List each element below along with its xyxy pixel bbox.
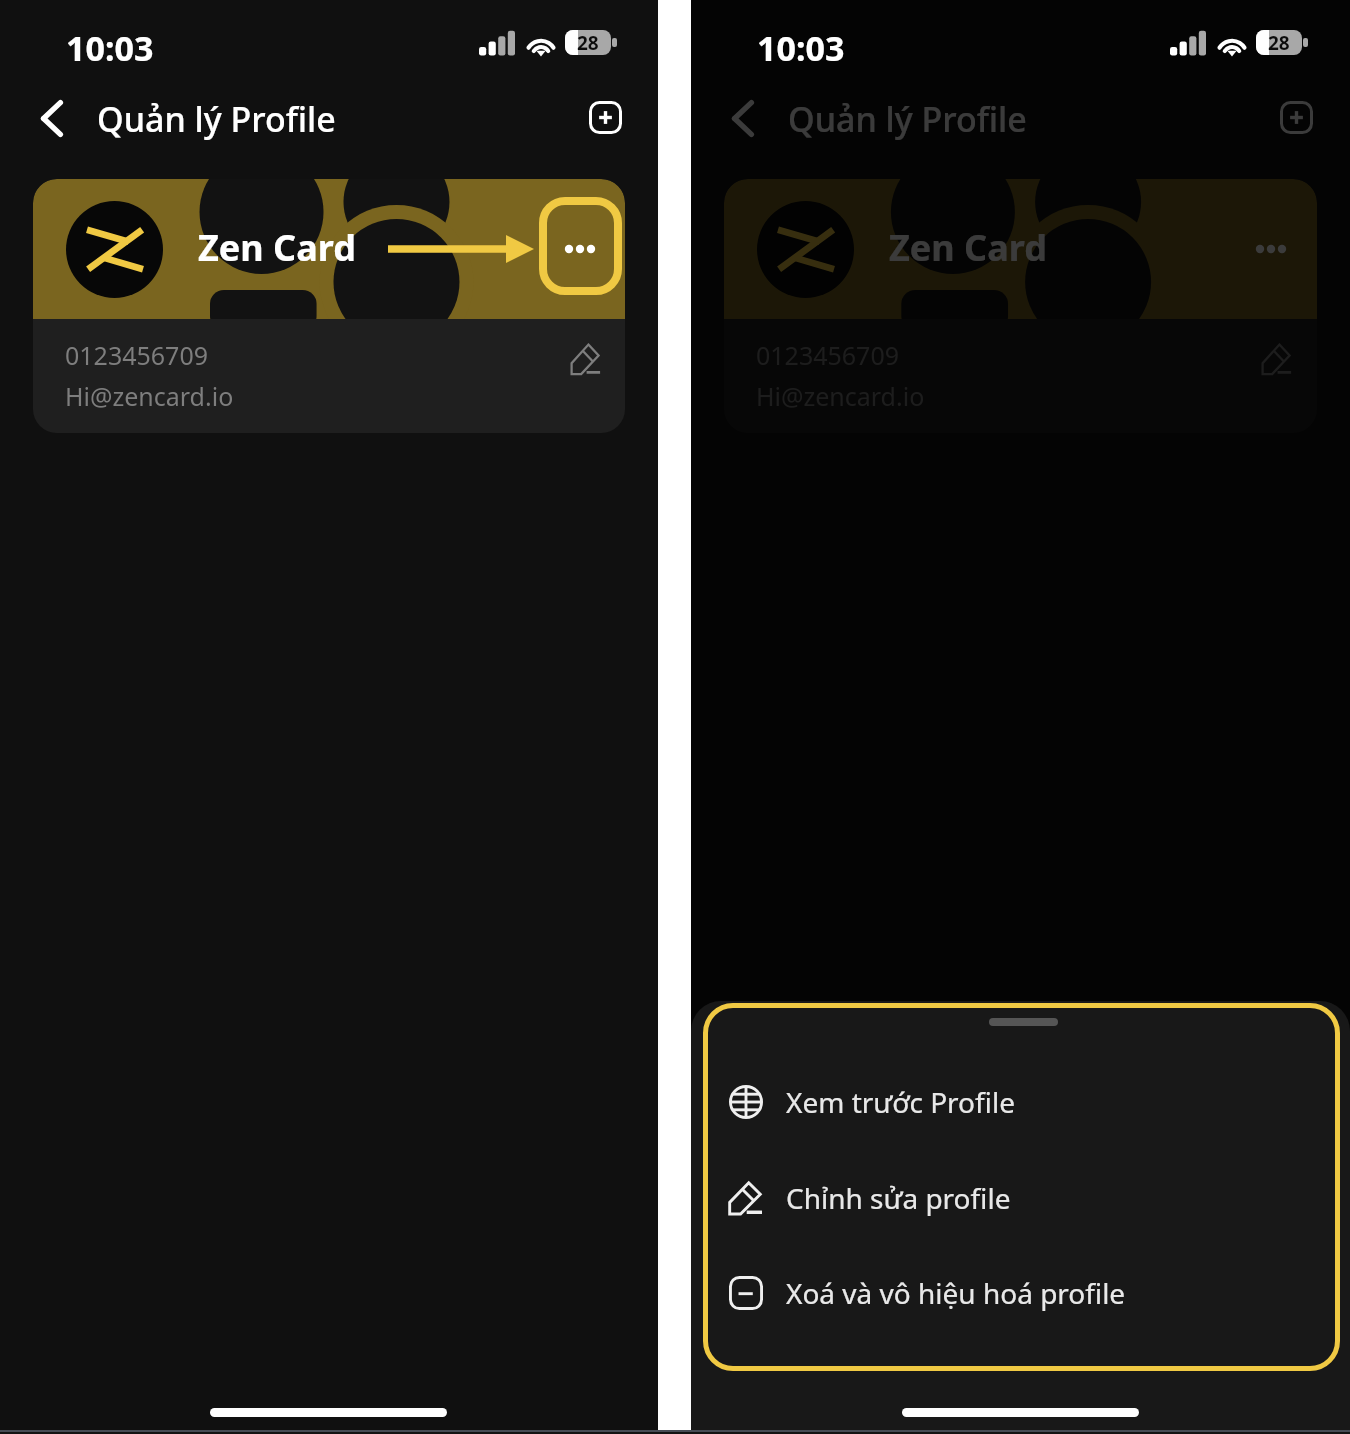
staticText: Xem trước Profile <box>786 1083 1015 1121</box>
staticText: 28 <box>577 30 599 55</box>
button[interactable]: Edit profile details <box>571 343 601 375</box>
staticText: Quản lý Profile <box>788 96 1027 142</box>
staticText: Quản lý Profile <box>97 96 336 142</box>
button[interactable]: Back <box>717 92 769 144</box>
button[interactable]: Add profile <box>589 101 622 134</box>
button[interactable]: Xoá và vô hiệu hoá profile <box>691 1259 1350 1327</box>
button[interactable]: More options <box>1245 223 1297 275</box>
button[interactable]: Add profile <box>1280 101 1313 134</box>
button[interactable]: More options highlighted <box>539 197 622 295</box>
button[interactable]: Edit profile details <box>1262 343 1292 375</box>
staticText: Chỉnh sửa profile <box>786 1179 1011 1217</box>
staticText: Zen Card <box>889 223 1047 272</box>
button[interactable]: Back <box>26 92 78 144</box>
staticText: 28 <box>1268 30 1290 55</box>
button[interactable]: More options <box>554 223 606 275</box>
staticText: Hi@zencard.io <box>756 379 925 413</box>
staticText: 10:03 <box>66 25 154 71</box>
staticText: 0123456709 <box>65 338 209 372</box>
button[interactable]: Chỉnh sửa profile <box>691 1164 1350 1232</box>
staticText: 0123456709 <box>756 338 900 372</box>
button[interactable]: Xem trước Profile <box>691 1068 1350 1136</box>
staticText: Zen Card <box>198 223 356 272</box>
staticText: Hi@zencard.io <box>65 379 234 413</box>
staticText: 10:03 <box>757 25 845 71</box>
staticText: Xoá và vô hiệu hoá profile <box>786 1274 1126 1312</box>
